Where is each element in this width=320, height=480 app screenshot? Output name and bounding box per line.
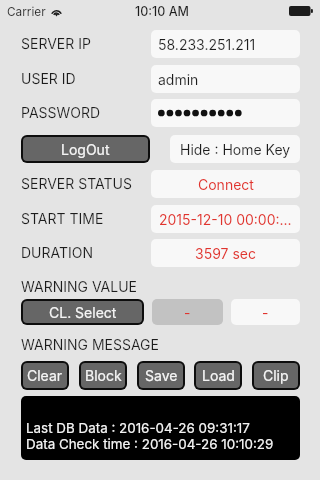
button[interactable]: Hide : Home Key <box>170 135 300 163</box>
staticText: WARNING MESSAGE <box>21 336 159 353</box>
staticText: DURATION <box>21 244 94 261</box>
staticText: START TIME <box>21 210 104 227</box>
button[interactable]: - <box>152 299 223 325</box>
staticText: Last DB Data : 2016-04-26 09:31:17 <box>26 420 250 436</box>
staticText: WARNING VALUE <box>21 278 138 295</box>
staticText: Clear <box>27 367 63 384</box>
staticText: - <box>184 304 191 321</box>
button[interactable]: 2015-12-10 00:00:... <box>151 205 300 233</box>
staticText: Save <box>145 367 178 384</box>
button[interactable]: CL. Select <box>23 301 142 323</box>
staticText: Data Check time : 2016-04-26 10:10:29 <box>26 436 274 452</box>
staticText: 58.233.251.211 <box>158 36 256 53</box>
button[interactable]: Clip <box>254 363 298 388</box>
staticText: Load <box>202 367 235 384</box>
staticText: Hide : Home Key <box>180 141 291 158</box>
staticText: LogOut <box>61 141 110 158</box>
button[interactable]: admin <box>151 65 300 93</box>
button[interactable]: Last DB Data : 2016-04-26 09:31:17 <box>21 396 300 460</box>
button[interactable]: Save <box>139 363 183 388</box>
button[interactable] <box>151 99 300 127</box>
staticText: 3597 sec <box>195 245 256 262</box>
other: Wi-Fi <box>49 6 64 16</box>
button[interactable]: Connect <box>151 170 300 198</box>
staticText: CL. Select <box>49 304 117 321</box>
staticText: admin <box>158 71 199 88</box>
button[interactable]: Block <box>81 363 125 388</box>
button[interactable]: - <box>231 299 300 325</box>
button[interactable]: 58.233.251.211 <box>151 30 300 58</box>
other: Battery <box>289 6 313 16</box>
staticText: SERVER IP <box>21 35 91 52</box>
staticText: Carrier <box>7 5 46 19</box>
staticText: Connect <box>198 176 254 193</box>
button[interactable]: Clear <box>23 363 67 388</box>
staticText: Block <box>85 367 122 384</box>
staticText: 2015-12-10 00:00:... <box>159 211 292 228</box>
staticText: - <box>262 304 269 321</box>
staticText: USER ID <box>21 70 76 87</box>
button[interactable]: 3597 sec <box>151 239 300 267</box>
staticText: PASSWORD <box>21 104 101 121</box>
button[interactable]: Load <box>196 363 240 388</box>
button[interactable]: LogOut <box>23 137 148 161</box>
staticText: 10:10 AM <box>135 4 189 19</box>
staticText: Clip <box>263 367 289 384</box>
staticText: SERVER STATUS <box>21 175 132 192</box>
